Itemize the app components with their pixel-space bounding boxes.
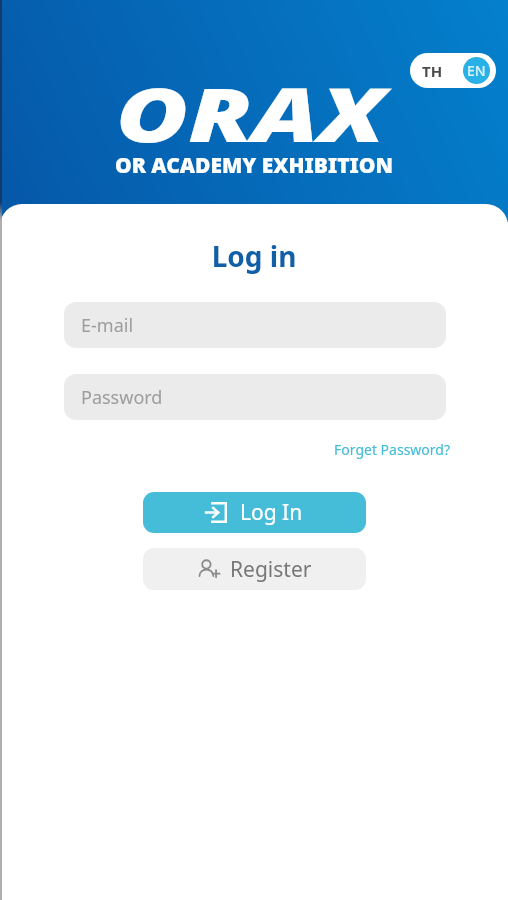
staticText: Log in <box>0 237 508 275</box>
staticText: E-mail <box>81 313 134 338</box>
staticText: Log In <box>240 498 303 527</box>
button[interactable]: Password <box>64 374 446 420</box>
staticText: OR ACADEMY EXHIBITION <box>0 151 508 180</box>
staticText: Register <box>230 555 312 584</box>
staticText: Password <box>81 385 163 410</box>
button[interactable]: Register <box>143 548 366 590</box>
button[interactable]: Log In <box>143 492 366 533</box>
staticText: ORAX <box>116 63 384 164</box>
staticText: EN <box>467 61 486 80</box>
staticText: TH <box>422 61 443 81</box>
button[interactable]: Switch language Thai English <box>410 53 496 88</box>
staticText: Forget Password? <box>0 440 450 459</box>
button[interactable]: E-mail <box>64 302 446 348</box>
